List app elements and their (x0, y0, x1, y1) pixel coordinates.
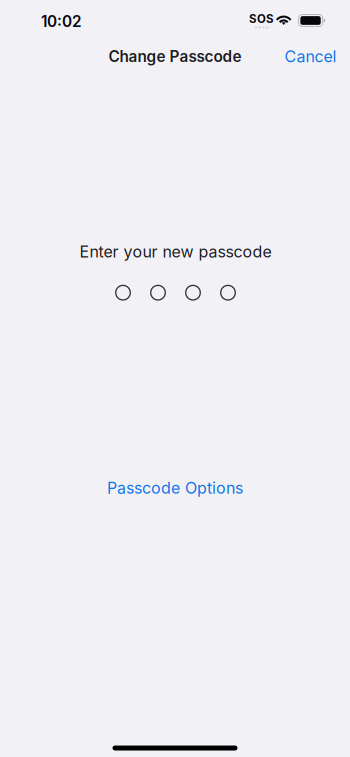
staticText: Enter your new passcode (79, 242, 271, 261)
button[interactable]: Passcode Options (97, 470, 253, 506)
staticText: SOS (249, 12, 274, 26)
button[interactable]: Cancel (278, 39, 342, 74)
staticText: Passcode Options (107, 478, 243, 498)
staticText: Cancel (284, 47, 336, 66)
staticText: Change Passcode (108, 47, 241, 66)
staticText: 10:02 (41, 12, 82, 31)
